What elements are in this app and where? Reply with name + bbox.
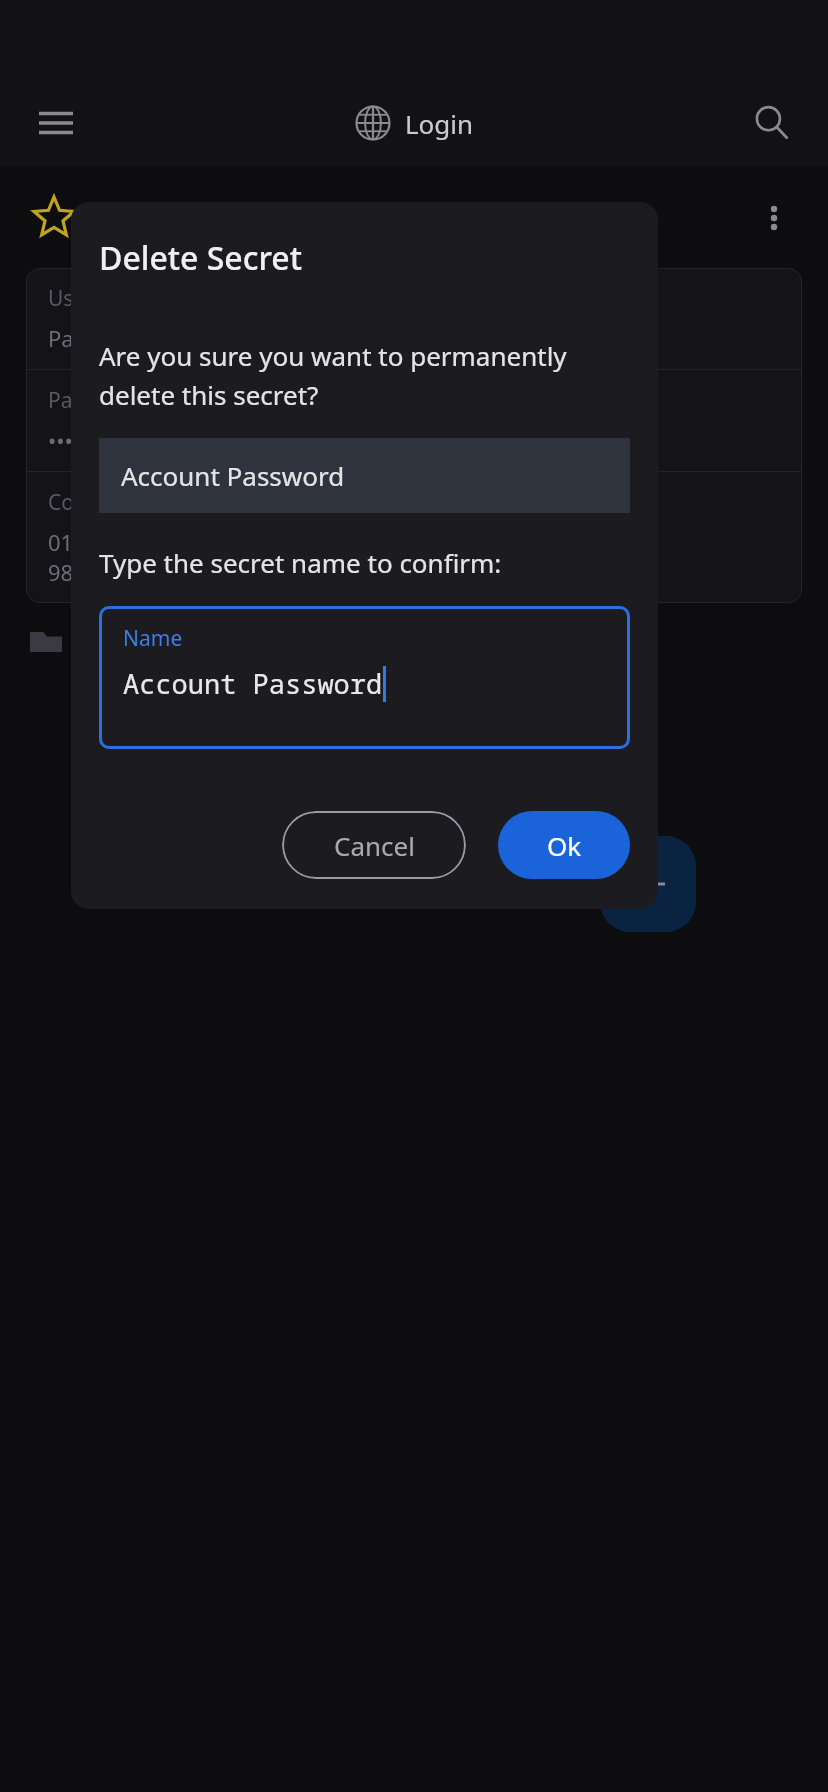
button[interactable]: Add secret (600, 836, 696, 932)
staticText: Ok (547, 828, 582, 863)
button[interactable]: Name (99, 606, 630, 749)
staticText: Delete Secret (99, 236, 302, 280)
staticText: Password (48, 386, 143, 415)
staticText: Cancel (334, 828, 415, 863)
button[interactable]: Menu (26, 93, 86, 153)
button[interactable]: Search (742, 93, 802, 153)
staticText: Paolo (48, 323, 106, 353)
staticText: Are you sure you want to permanently del… (99, 338, 630, 412)
button[interactable]: More options (746, 190, 802, 246)
button[interactable]: Cancel (282, 811, 466, 879)
staticText: ••••••••• (48, 425, 123, 455)
staticText: Account Password (123, 665, 383, 702)
staticText: Username (48, 284, 151, 313)
staticText: Default (78, 626, 158, 657)
staticText: Name (123, 624, 183, 653)
button[interactable]: Username (26, 268, 802, 603)
button[interactable]: Default (30, 625, 798, 657)
staticText: 01234567890 9876543210 (48, 527, 187, 587)
staticText: Type the secret name to confirm: (99, 545, 502, 580)
button[interactable]: Ok (498, 811, 630, 879)
button[interactable]: Favourite (26, 190, 82, 246)
staticText: Login (405, 106, 474, 141)
staticText: Account Password (121, 458, 345, 493)
staticText: Comment (48, 488, 146, 517)
